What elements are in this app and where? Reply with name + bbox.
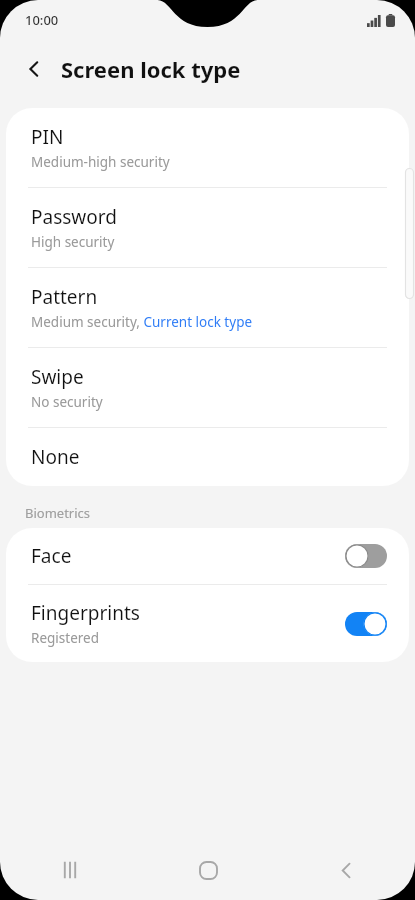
button[interactable]: Swipe bbox=[6, 348, 409, 427]
staticText: Screen lock type bbox=[61, 54, 241, 84]
button[interactable]: Pattern bbox=[6, 268, 409, 347]
staticText: Biometrics bbox=[25, 504, 91, 522]
staticText: Pattern bbox=[31, 284, 98, 310]
staticText: Fingerprints bbox=[31, 600, 140, 626]
button[interactable]: None bbox=[6, 428, 409, 486]
staticText: Password bbox=[31, 204, 117, 230]
button[interactable]: Recent apps bbox=[0, 840, 139, 900]
staticText: Swipe bbox=[31, 364, 84, 390]
button[interactable]: Back bbox=[277, 840, 415, 900]
button[interactable]: Back bbox=[12, 47, 56, 91]
staticText: PIN bbox=[31, 124, 64, 150]
staticText: Medium-high security bbox=[31, 153, 170, 171]
staticText: High security bbox=[31, 233, 115, 251]
button[interactable]: Toggle off bbox=[345, 544, 387, 568]
staticText: Medium security, Current lock type bbox=[31, 313, 253, 331]
button[interactable]: Fingerprints bbox=[6, 585, 409, 662]
staticText: Registered bbox=[31, 629, 99, 647]
staticText: 10:00 bbox=[25, 11, 59, 29]
button[interactable]: Face bbox=[6, 528, 409, 584]
staticText: None bbox=[31, 444, 80, 470]
button[interactable]: Home bbox=[139, 840, 277, 900]
staticText: Face bbox=[31, 543, 72, 569]
button[interactable]: PIN bbox=[6, 108, 409, 187]
button[interactable]: Password bbox=[6, 188, 409, 267]
button[interactable]: Toggle on bbox=[345, 612, 387, 636]
staticText: No security bbox=[31, 393, 103, 411]
